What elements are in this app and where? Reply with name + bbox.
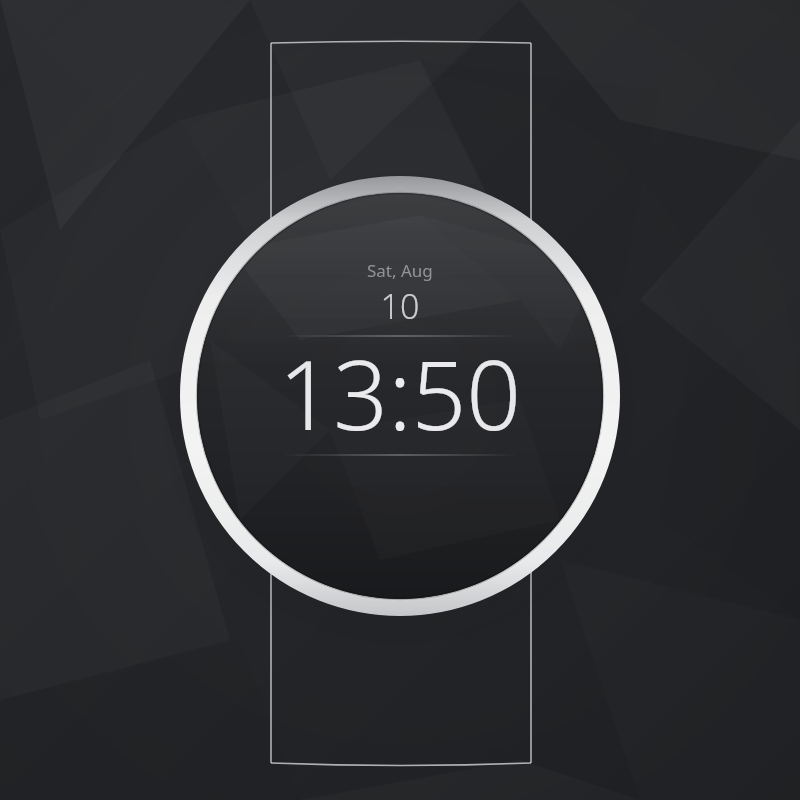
button[interactable]: Watch face preview xyxy=(0,0,800,800)
